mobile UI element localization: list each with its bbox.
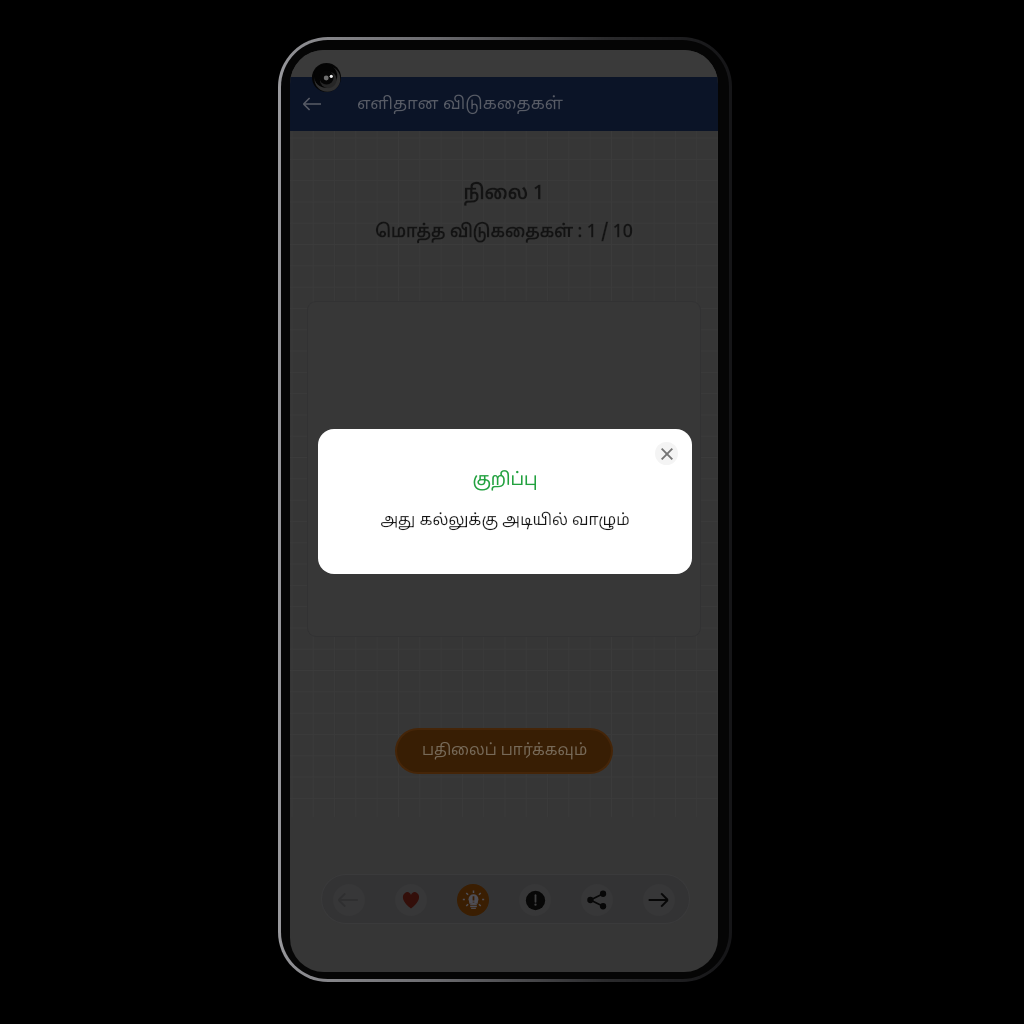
button[interactable]: Favourite [395, 884, 427, 916]
button[interactable]: பதிலைப் பார்க்கவும் [397, 730, 611, 772]
staticText: மொத்த விடுகதைகள் : 1 / 10 [290, 222, 718, 244]
button[interactable]: Close [655, 442, 678, 465]
button[interactable]: Hint [457, 884, 489, 916]
staticText: குறிப்பு [318, 470, 692, 492]
staticText: நிலை 1 [290, 182, 718, 207]
staticText: அது கல்லுக்கு அடியில் வாழும் [318, 511, 692, 531]
staticText: எளிதான விடுகதைகள் [357, 94, 564, 115]
staticText: பதிலைப் பார்க்கவும் [422, 742, 587, 761]
button[interactable]: Next riddle [643, 884, 675, 916]
button[interactable]: Share [581, 884, 613, 916]
button[interactable]: Navigate up [294, 85, 332, 123]
button[interactable]: Report [519, 884, 551, 916]
